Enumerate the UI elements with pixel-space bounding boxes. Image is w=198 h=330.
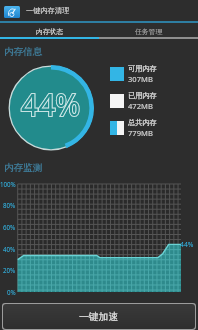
staticText: 779MB	[128, 128, 153, 138]
button[interactable]: 一键加速	[3, 304, 195, 329]
button[interactable]: 内存状态	[0, 24, 99, 38]
staticText: 内存信息	[4, 46, 42, 58]
staticText: 20%	[3, 266, 16, 274]
staticText: 总共内存	[128, 118, 157, 127]
staticText: 100%	[0, 180, 16, 188]
staticText: 60%	[3, 223, 16, 231]
staticText: 内存状态	[36, 27, 64, 36]
staticText: 472MB	[128, 101, 153, 111]
staticText: 80%	[3, 201, 16, 209]
staticText: 307MB	[128, 74, 153, 84]
staticText: 44%	[180, 240, 194, 249]
staticText: 一键内存清理	[26, 6, 70, 15]
staticText: 已用内存	[128, 91, 157, 100]
staticText: 任务管理	[135, 27, 163, 36]
button[interactable]: App icon	[4, 6, 20, 18]
staticText: 可用内存	[128, 64, 157, 73]
button[interactable]: 任务管理	[99, 24, 198, 38]
staticText: 一键加速	[79, 311, 119, 323]
staticText: 44%	[21, 84, 81, 125]
staticText: 40%	[3, 245, 16, 253]
staticText: 内存监测	[4, 162, 42, 174]
staticText: 44%	[21, 84, 81, 125]
staticText: 0%	[7, 288, 16, 296]
